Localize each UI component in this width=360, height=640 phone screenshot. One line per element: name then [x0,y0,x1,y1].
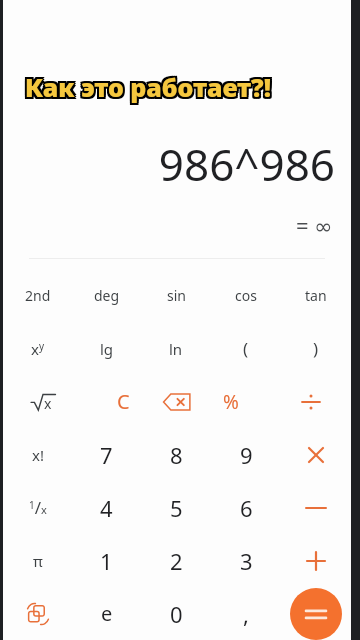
staticText: C [117,388,130,415]
button[interactable]: 1 [72,534,141,587]
staticText: = ∞ [296,210,333,240]
button[interactable]: , [211,587,281,640]
staticText: 9 [240,440,253,470]
staticText: 4 [100,493,113,523]
staticText: 3 [240,546,253,576]
staticText: π [33,551,43,571]
button[interactable]: xy [3,322,72,375]
button[interactable]: ( [211,322,281,375]
button[interactable]: % [191,375,271,428]
button[interactable]: deg [72,269,141,322]
button[interactable]: lg [72,322,141,375]
staticText: , [243,599,249,629]
button[interactable]: Convert units [3,587,72,640]
button[interactable]: 2 [141,534,211,587]
staticText: ( [243,337,249,360]
staticText: Как это работает?! [25,72,271,106]
button[interactable]: Equals [290,588,342,640]
staticText: Как это работает?! [23,68,269,102]
staticText: Как это работает?! [23,70,269,104]
button[interactable]: ln [141,322,211,375]
staticText: cos [235,286,257,305]
button[interactable]: C [83,375,163,428]
button[interactable]: 8 [141,428,211,481]
button[interactable]: Multiply [281,428,351,481]
staticText: Как это работает?! [23,72,269,106]
staticText: 2 [170,546,183,576]
staticText: % [223,389,239,415]
staticText: deg [94,286,120,305]
button[interactable]: 4 [72,481,141,534]
staticText: 1 [100,546,113,576]
button[interactable]: 2nd [3,269,72,322]
staticText: Как это работает?! [25,70,271,104]
staticText: 2nd [25,286,51,305]
button[interactable]: cos [211,269,281,322]
staticText: 0 [170,599,183,629]
staticText: 7 [100,440,113,470]
staticText: x [44,394,52,413]
staticText: Как это работает?! [27,72,273,106]
staticText: xy [31,339,45,359]
button[interactable]: 7 [72,428,141,481]
staticText: ln [169,339,183,359]
button[interactable]: 3 [211,534,281,587]
staticText: 1/x [29,496,47,519]
button[interactable]: Minus [281,481,351,534]
staticText: Как это работает?! [27,68,273,102]
staticText: x! [32,445,44,465]
button[interactable]: ) [281,322,351,375]
staticText: lg [100,339,114,359]
button[interactable]: 6 [211,481,281,534]
button[interactable]: Plus [281,534,351,587]
button[interactable]: 1/x [3,481,72,534]
button[interactable]: 5 [141,481,211,534]
staticText: e [101,600,113,627]
staticText: 986^986 [158,134,335,194]
button[interactable]: 0 [141,587,211,640]
button[interactable]: tan [281,269,351,322]
button[interactable]: x! [3,428,72,481]
staticText: Как это работает?! [27,70,273,104]
staticText: tan [305,286,327,305]
staticText: sin [167,286,186,305]
button[interactable]: 9 [211,428,281,481]
button[interactable]: sin [141,269,211,322]
button[interactable]: Square root [3,375,83,428]
staticText: 5 [170,493,183,523]
button[interactable]: Divide [271,375,351,428]
staticText: 8 [170,440,183,470]
staticText: Как это работает?! [25,68,271,102]
staticText: ) [313,337,319,360]
button[interactable]: e [72,587,141,640]
button[interactable]: π [3,534,72,587]
staticText: 6 [240,493,253,523]
